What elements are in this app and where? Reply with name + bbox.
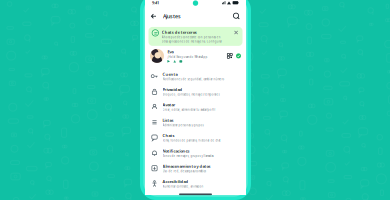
staticText: Aumentar contraste, animación xyxy=(162,185,203,188)
staticText: Chats xyxy=(162,133,174,138)
staticText: Bloqueo, contactos, mensajes temporales xyxy=(162,93,219,96)
button[interactable]: Cuenta xyxy=(145,68,246,84)
staticText: Privacidad xyxy=(162,87,182,92)
staticText: Tonos de mensajes, grupos y llamadas xyxy=(162,154,213,158)
button[interactable]: Cerrar xyxy=(233,29,239,35)
staticText: Cuenta xyxy=(162,71,177,77)
button[interactable]: Listas xyxy=(145,114,246,130)
staticText: Listas xyxy=(162,117,173,123)
button[interactable]: Notificaciones xyxy=(145,145,246,160)
staticText: Tema, fondos de pantalla, historial de c… xyxy=(162,139,220,142)
button[interactable]: Eva xyxy=(145,46,246,66)
button[interactable]: Search xyxy=(231,11,242,22)
staticText: ¡Hola! Estoy usando WhatsApp. xyxy=(167,55,208,59)
staticText: Accesibilidad xyxy=(162,179,188,184)
button[interactable]: Chats xyxy=(145,130,246,145)
staticText: Almacenamiento y datos xyxy=(162,163,210,169)
button[interactable]: Accesibilidad xyxy=(145,176,246,191)
button[interactable]: Back xyxy=(149,11,160,22)
staticText: Eva xyxy=(167,49,173,54)
staticText: Ahora puedes conectarte con personas en xyxy=(162,35,221,39)
staticText: Chats de terceros xyxy=(162,29,197,35)
staticText: Ajustes xyxy=(163,13,181,20)
staticText: 9:41 xyxy=(152,0,159,5)
staticText: Notificaciones de seguridad, cambiar núm… xyxy=(162,77,224,81)
button[interactable]: Almacenamiento y datos xyxy=(145,161,246,176)
button[interactable]: Avatar xyxy=(145,99,246,114)
staticText: otras aplicaciones de mensajería. Config… xyxy=(162,40,222,43)
staticText: Notificaciones xyxy=(162,148,189,153)
staticText: Crear, editar, administrar tu avatar/per… xyxy=(162,108,215,112)
staticText: Administrar personas y grupos xyxy=(162,123,203,127)
staticText: Avatar xyxy=(162,102,175,107)
button[interactable]: Privacidad xyxy=(145,84,246,99)
staticText: Uso de red, descarga automática xyxy=(162,169,205,173)
